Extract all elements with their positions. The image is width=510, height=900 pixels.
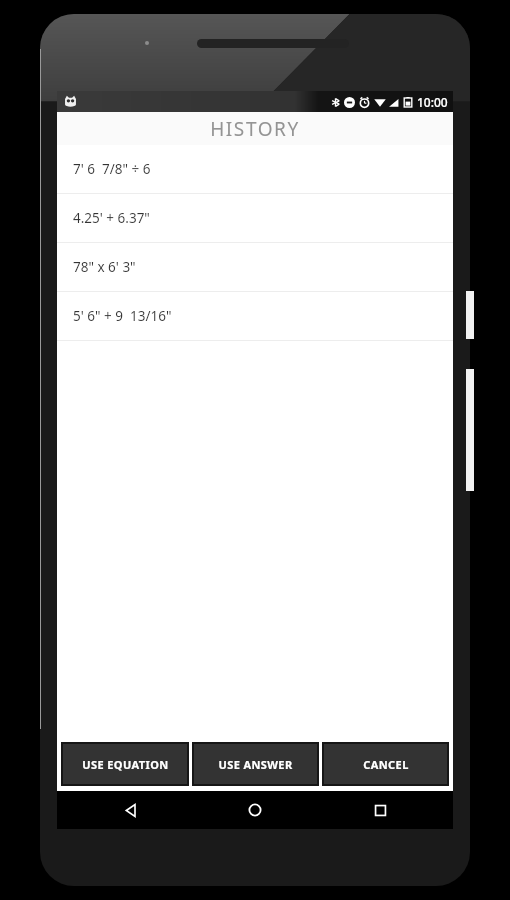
button[interactable]: USE EQUATION [63, 744, 187, 784]
button[interactable]: 7' 6 7/8" ÷ 6 [57, 145, 453, 193]
button[interactable]: USE ANSWER [194, 744, 317, 784]
staticText: 78" x 6' 3" [73, 258, 136, 276]
staticText: 10:00 [417, 94, 448, 110]
staticText: 5' 6" + 9 13/16" [73, 307, 172, 325]
button[interactable]: 78" x 6' 3" [57, 243, 453, 291]
staticText: 7' 6 7/8" ÷ 6 [73, 160, 151, 178]
staticText: CANCEL [363, 757, 409, 772]
button[interactable]: Back [111, 791, 149, 829]
staticText: 4.25' + 6.37" [73, 209, 150, 227]
button[interactable]: 5' 6" + 9 13/16" [57, 292, 453, 340]
button[interactable]: Recent apps [361, 791, 399, 829]
staticText: USE ANSWER [218, 757, 293, 772]
staticText: HISTORY [210, 116, 300, 142]
button[interactable]: 4.25' + 6.37" [57, 194, 453, 242]
button[interactable]: CANCEL [324, 744, 447, 784]
button[interactable]: Home [236, 791, 274, 829]
staticText: USE EQUATION [82, 757, 169, 772]
